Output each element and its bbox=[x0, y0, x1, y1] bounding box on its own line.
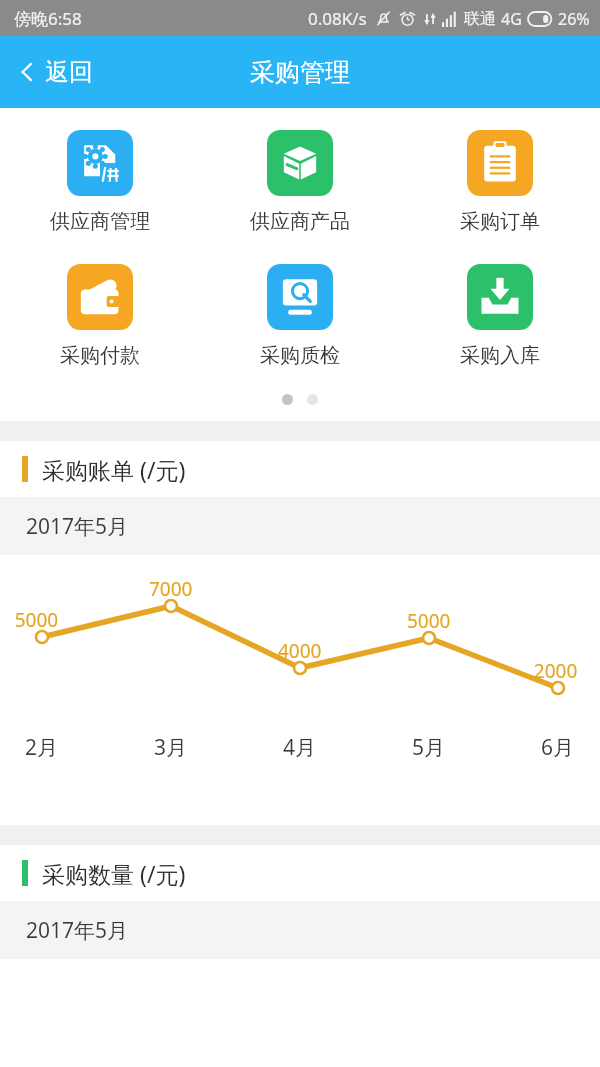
staticText: 供应商产品 bbox=[250, 209, 350, 234]
button[interactable]: 采购订单 bbox=[400, 128, 600, 236]
staticText: 采购订单 bbox=[460, 209, 540, 234]
staticText: 供应商管理 bbox=[50, 209, 150, 234]
staticText: 傍晚6:58 bbox=[14, 7, 82, 30]
button[interactable]: 返回 bbox=[0, 45, 111, 99]
staticText: 2017年5月 bbox=[26, 512, 129, 541]
staticText: 采购入库 bbox=[460, 343, 540, 368]
staticText: 联通 bbox=[464, 9, 496, 29]
staticText: 0.08K/s bbox=[308, 7, 367, 30]
button[interactable]: 采购数量 (/元) bbox=[0, 845, 600, 901]
staticText: 采购账单 (/元) bbox=[42, 454, 186, 485]
staticText: 4G bbox=[501, 8, 522, 30]
button[interactable]: 采购账单 (/元) bbox=[0, 441, 600, 497]
other: 返回 bbox=[16, 61, 38, 83]
staticText: 采购管理 bbox=[250, 57, 350, 88]
staticText: 26% bbox=[558, 8, 590, 30]
button[interactable]: 采购质检 bbox=[200, 262, 400, 370]
staticText: 采购质检 bbox=[260, 343, 340, 368]
staticText: 返回 bbox=[45, 57, 93, 87]
staticText: 2017年5月 bbox=[26, 916, 129, 945]
staticText: 采购数量 (/元) bbox=[42, 858, 186, 889]
button[interactable]: 采购付款 bbox=[0, 262, 200, 370]
staticText: 采购付款 bbox=[60, 343, 140, 368]
button[interactable]: 供应商管理 bbox=[0, 128, 200, 236]
button[interactable]: 供应商产品 bbox=[200, 128, 400, 236]
button[interactable]: 采购入库 bbox=[400, 262, 600, 370]
